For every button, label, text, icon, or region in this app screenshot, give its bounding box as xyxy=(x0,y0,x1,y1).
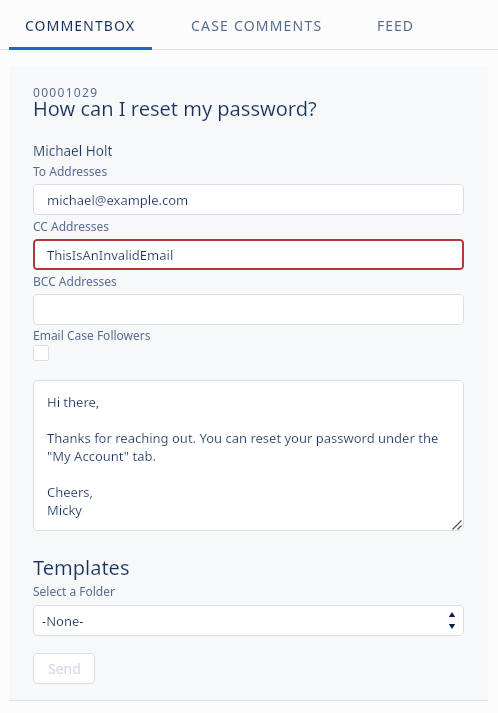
staticText: Michael Holt xyxy=(33,142,113,160)
staticText: COMMENTBOX xyxy=(25,16,136,35)
staticText: Micky xyxy=(47,501,82,519)
staticText: Hi there, xyxy=(47,393,100,411)
staticText: Email Case Followers xyxy=(33,327,151,343)
staticText: BCC Addresses xyxy=(33,273,117,289)
staticText: Thanks for reaching out. You can reset y… xyxy=(47,429,439,447)
button[interactable]: Email Case Followers xyxy=(33,345,49,361)
staticText: Select a Folder xyxy=(33,583,115,599)
staticText: Templates xyxy=(33,554,130,581)
staticText: "My Account" tab. xyxy=(47,447,156,465)
staticText: How can I reset my password? xyxy=(33,95,317,122)
staticText: FEED xyxy=(377,16,415,35)
staticText: CC Addresses xyxy=(33,218,109,234)
button[interactable]: ThisIsAnInvalidEmail xyxy=(33,239,464,270)
button[interactable] xyxy=(33,294,464,325)
button[interactable]: CASE COMMENTS xyxy=(161,0,353,50)
staticText: Cheers, xyxy=(47,483,93,501)
staticText: Send xyxy=(48,659,81,678)
staticText: michael@example.com xyxy=(47,191,189,209)
button[interactable]: michael@example.com xyxy=(33,184,464,215)
button[interactable]: COMMENTBOX xyxy=(0,0,161,50)
button[interactable]: Select a Folder xyxy=(33,605,464,636)
button[interactable]: FEED xyxy=(353,0,439,50)
button[interactable]: Hi there, xyxy=(33,380,464,531)
staticText: CASE COMMENTS xyxy=(191,16,323,35)
staticText: ThisIsAnInvalidEmail xyxy=(47,246,174,264)
staticText: To Addresses xyxy=(33,163,108,179)
button[interactable]: Send xyxy=(33,653,95,684)
staticText: -None- xyxy=(42,612,84,630)
staticText: 00001029 xyxy=(33,84,99,100)
